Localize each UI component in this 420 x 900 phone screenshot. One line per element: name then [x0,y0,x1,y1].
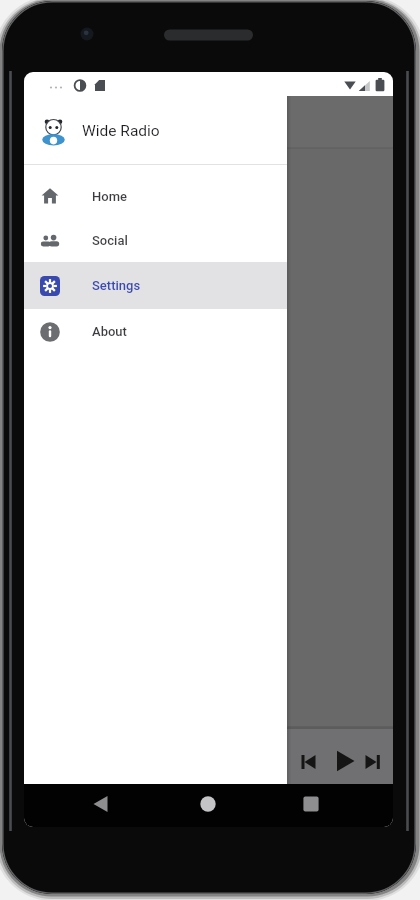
button[interactable] [92,788,124,820]
button[interactable]: Settings [24,262,287,309]
staticText: Social [92,233,128,248]
button[interactable] [296,750,320,774]
button[interactable]: Social [24,218,287,262]
button[interactable] [295,788,327,820]
button[interactable]: About [24,309,287,354]
staticText: Wide Radio [82,122,160,140]
button[interactable]: Home [24,174,287,218]
button[interactable] [192,788,224,820]
button[interactable] [362,750,386,774]
staticText: Settings [92,278,141,293]
staticText: Home [92,189,127,204]
button[interactable] [333,748,359,774]
staticText: About [92,324,127,339]
